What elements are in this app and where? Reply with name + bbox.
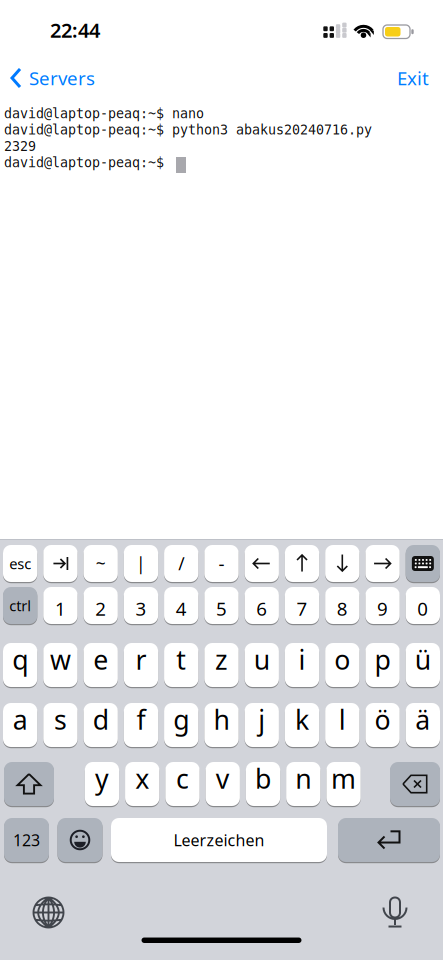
button[interactable]: Up arrow — [285, 545, 319, 582]
staticText: 123 — [13, 829, 40, 851]
staticText: w — [50, 642, 71, 677]
button[interactable]: esc — [3, 545, 37, 582]
staticText: l — [339, 702, 346, 737]
button[interactable]: i — [285, 643, 319, 687]
button[interactable]: y — [85, 762, 119, 806]
button[interactable]: s — [43, 703, 78, 747]
button[interactable]: ö — [365, 703, 400, 747]
staticText: z — [215, 642, 228, 677]
button[interactable]: 6 — [245, 587, 279, 624]
button[interactable]: o — [325, 643, 359, 687]
staticText: Exit — [397, 66, 429, 90]
button[interactable]: r — [124, 643, 158, 687]
button[interactable]: j — [245, 703, 279, 747]
staticText: f — [136, 702, 145, 737]
button[interactable]: z — [204, 643, 239, 687]
button[interactable]: 5 — [204, 587, 239, 624]
button[interactable]: ä — [406, 703, 440, 747]
staticText: v — [216, 761, 230, 796]
button[interactable]: 4 — [164, 587, 198, 624]
staticText: david@laptop-peaq:~$ python3 abakus20240… — [4, 122, 372, 137]
button[interactable]: h — [204, 703, 239, 747]
button[interactable]: a — [3, 703, 37, 747]
staticText: j — [258, 702, 265, 737]
button[interactable]: l — [325, 703, 359, 747]
staticText: 0 — [417, 596, 428, 621]
button[interactable]: Right arrow — [365, 545, 400, 582]
staticText: i — [298, 642, 305, 677]
button[interactable]: Leerzeichen — [111, 818, 327, 862]
button[interactable]: Delete — [390, 762, 440, 806]
staticText: ctrl — [9, 596, 31, 615]
staticText: Leerzeichen — [173, 829, 264, 851]
staticText: n — [295, 761, 311, 796]
button[interactable]: 123 — [4, 818, 49, 862]
button[interactable]: Shift — [4, 762, 54, 806]
button[interactable]: b — [246, 762, 280, 806]
button[interactable]: t — [164, 643, 198, 687]
staticText: m — [331, 761, 356, 796]
staticText: b — [255, 761, 271, 796]
staticText: 4 — [176, 596, 187, 621]
button[interactable]: u — [245, 643, 279, 687]
staticText: 5 — [216, 596, 227, 621]
staticText: 7 — [296, 596, 307, 621]
button[interactable]: Dictation — [382, 896, 408, 928]
button[interactable]: e — [83, 643, 118, 687]
staticText: r — [135, 642, 146, 677]
button[interactable]: ctrl — [3, 587, 37, 624]
button[interactable]: v — [206, 762, 240, 806]
staticText: 22:44 — [50, 17, 100, 43]
button[interactable]: Servers — [10, 65, 95, 91]
button[interactable]: g — [164, 703, 198, 747]
staticText: e — [93, 642, 108, 677]
button[interactable]: p — [365, 643, 400, 687]
staticText: ü — [415, 642, 431, 677]
staticText: o — [334, 642, 350, 677]
staticText: david@laptop-peaq:~$ — [4, 155, 164, 170]
staticText: ä — [415, 702, 430, 737]
staticText: 8 — [337, 596, 348, 621]
button[interactable]: x — [125, 762, 159, 806]
button[interactable]: n — [286, 762, 320, 806]
button[interactable]: f — [124, 703, 158, 747]
staticText: esc — [9, 554, 31, 573]
button[interactable]: 9 — [365, 587, 400, 624]
button[interactable]: Exit — [369, 65, 429, 91]
button[interactable]: d — [83, 703, 118, 747]
button[interactable]: Hide keyboard — [406, 545, 440, 582]
staticText: 9 — [377, 596, 388, 621]
staticText: - — [218, 551, 224, 576]
button[interactable]: 8 — [325, 587, 359, 624]
button[interactable]: 0 — [406, 587, 440, 624]
button[interactable]: Down arrow — [325, 545, 359, 582]
button[interactable]: ~ — [83, 545, 118, 582]
staticText: g — [173, 702, 189, 737]
staticText: c — [176, 761, 189, 796]
staticText: 6 — [256, 596, 267, 621]
button[interactable]: / — [164, 545, 198, 582]
button[interactable]: Emoji — [57, 818, 102, 862]
button[interactable]: 1 — [43, 587, 78, 624]
staticText: | — [136, 552, 146, 575]
button[interactable]: q — [3, 643, 37, 687]
button[interactable]: 7 — [285, 587, 319, 624]
button[interactable]: Next keyboard — [32, 896, 64, 928]
button[interactable]: c — [165, 762, 200, 806]
button[interactable]: ü — [406, 643, 440, 687]
button[interactable]: w — [43, 643, 78, 687]
staticText: y — [95, 761, 109, 796]
button[interactable]: Return — [338, 818, 440, 862]
button[interactable]: k — [285, 703, 319, 747]
button[interactable]: Left arrow — [245, 545, 279, 582]
staticText: 2329 — [4, 139, 36, 154]
staticText: x — [135, 761, 149, 796]
staticText: 3 — [135, 596, 146, 621]
button[interactable]: 3 — [124, 587, 158, 624]
button[interactable]: Tab — [43, 545, 78, 582]
button[interactable]: 2 — [83, 587, 118, 624]
button[interactable]: | — [124, 545, 158, 582]
button[interactable]: m — [326, 762, 361, 806]
staticText: h — [213, 702, 229, 737]
button[interactable]: - — [204, 545, 239, 582]
